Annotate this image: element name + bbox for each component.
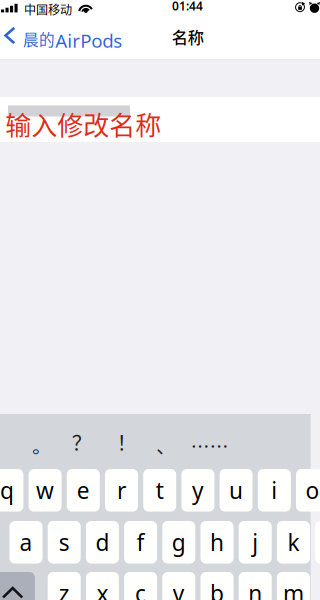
button[interactable]: b [200,572,233,600]
staticText: n [248,578,262,600]
staticText: i [271,475,277,505]
button[interactable]: 。 [23,430,61,460]
staticText: k [287,527,299,557]
button[interactable]: d [86,521,119,564]
button[interactable]: e [67,469,100,512]
staticText: 名称 [172,25,204,48]
button[interactable]: s [48,521,81,564]
staticText: v [173,578,185,600]
staticText: b [210,578,224,600]
button[interactable]: v [162,572,195,600]
staticText: d [95,527,109,557]
staticText: c [135,578,146,600]
button[interactable]: x [86,572,119,600]
staticText: e [77,475,90,505]
staticText: …… [191,431,229,458]
button[interactable]: 晨的 [0,20,132,52]
staticText: AirPods [55,28,122,53]
button[interactable]: y [181,469,214,512]
staticText: ？ [72,427,92,456]
staticText: 输入修改名称 [5,105,161,143]
staticText: 中国移动 [24,0,72,18]
button[interactable]: m [277,572,310,600]
staticText: s [59,527,70,557]
button[interactable]: w [29,469,62,512]
button[interactable]: g [162,521,195,564]
staticText: x [96,578,108,600]
button[interactable]: …… [187,430,233,460]
button[interactable]: a [9,521,42,564]
button[interactable]: ？ [63,427,101,457]
button[interactable]: Shift [0,572,35,600]
staticText: h [210,527,224,557]
button[interactable]: 、 [147,430,185,460]
button[interactable]: n [239,572,272,600]
button[interactable]: j [239,521,272,564]
button[interactable]: q [0,469,23,512]
staticText: a [19,527,32,557]
button[interactable]: r [105,469,138,512]
button[interactable]: z [48,572,81,600]
staticText: z [59,578,70,600]
button[interactable]: u [220,469,253,512]
staticText: y [192,475,204,505]
staticText: f [137,527,145,557]
button[interactable]: f [124,521,157,564]
staticText: r [117,475,126,505]
button[interactable]: l [315,521,320,564]
button[interactable]: ！ [108,427,146,457]
staticText: 晨的 [23,28,55,50]
button[interactable]: o [296,469,320,512]
staticText: g [172,527,186,557]
staticText: u [229,475,243,505]
staticText: m [283,578,304,600]
staticText: ！ [117,427,137,456]
button[interactable]: i [258,469,291,512]
staticText: w [36,475,54,505]
button[interactable]: c [124,572,157,600]
button[interactable]: h [200,521,233,564]
staticText: t [156,475,164,505]
button[interactable]: t [143,469,176,512]
staticText: 01:44 [172,0,203,14]
staticText: o [305,475,319,505]
staticText: 、 [156,431,175,458]
staticText: q [0,475,14,505]
staticText: 。 [32,431,51,458]
button[interactable]: k [277,521,310,564]
staticText: j [252,527,258,557]
